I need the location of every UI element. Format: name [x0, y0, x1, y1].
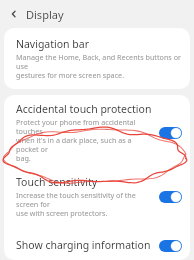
button[interactable]: Navigation bar — [4, 28, 190, 89]
button[interactable]: Show charging information — [4, 236, 190, 260]
staticText: Navigation bar — [16, 37, 90, 51]
button[interactable]: Accidental touch protection — [4, 95, 190, 168]
staticText: Display — [26, 7, 64, 22]
staticText: Increase the touch sensitivity of the sc… — [16, 190, 153, 218]
staticText: Show charging information — [16, 238, 151, 252]
staticText: Touch sensitivity — [16, 175, 98, 189]
staticText: Manage the Home, Back, and Recents butto… — [16, 52, 182, 80]
button[interactable]: Touch sensitivity — [4, 168, 190, 225]
button[interactable]: Toggle Accidental touch protection — [159, 127, 182, 139]
button[interactable]: Toggle Show charging information — [159, 240, 182, 252]
button[interactable]: Back — [6, 6, 22, 22]
staticText: Protect your phone from accidental touch… — [16, 117, 153, 163]
staticText: Accidental touch protection — [16, 102, 152, 116]
button[interactable]: Toggle Touch sensitivity — [159, 191, 182, 203]
